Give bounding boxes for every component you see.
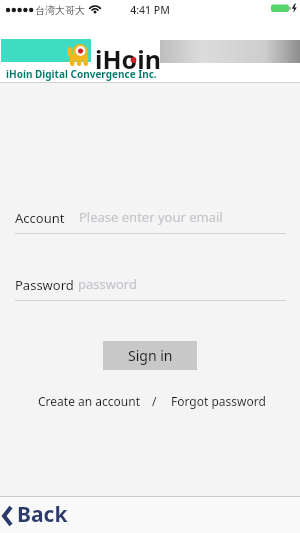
button[interactable]: Create an account xyxy=(38,393,140,409)
staticText: password xyxy=(78,275,137,293)
staticText: Sign in xyxy=(128,346,173,365)
staticText: Forgot password xyxy=(171,393,266,409)
button[interactable]: Forgot password xyxy=(171,393,266,409)
button[interactable]: Back xyxy=(0,497,90,533)
staticText: Please enter your email xyxy=(79,208,223,226)
button[interactable]: password xyxy=(78,272,288,296)
staticText: Account xyxy=(15,209,65,227)
button[interactable]: Sign in xyxy=(103,341,197,370)
staticText: Password xyxy=(15,276,74,294)
button[interactable]: Please enter your email xyxy=(79,205,289,229)
staticText: Back xyxy=(17,500,68,529)
staticText: iHoin xyxy=(95,42,161,76)
staticText: iHoin Digital Convergence Inc. xyxy=(6,67,157,81)
staticText: 4:41 PM xyxy=(0,3,300,17)
staticText: / xyxy=(152,393,157,409)
staticText: Create an account xyxy=(38,393,140,409)
staticText: 台湾大哥大 xyxy=(35,4,85,17)
